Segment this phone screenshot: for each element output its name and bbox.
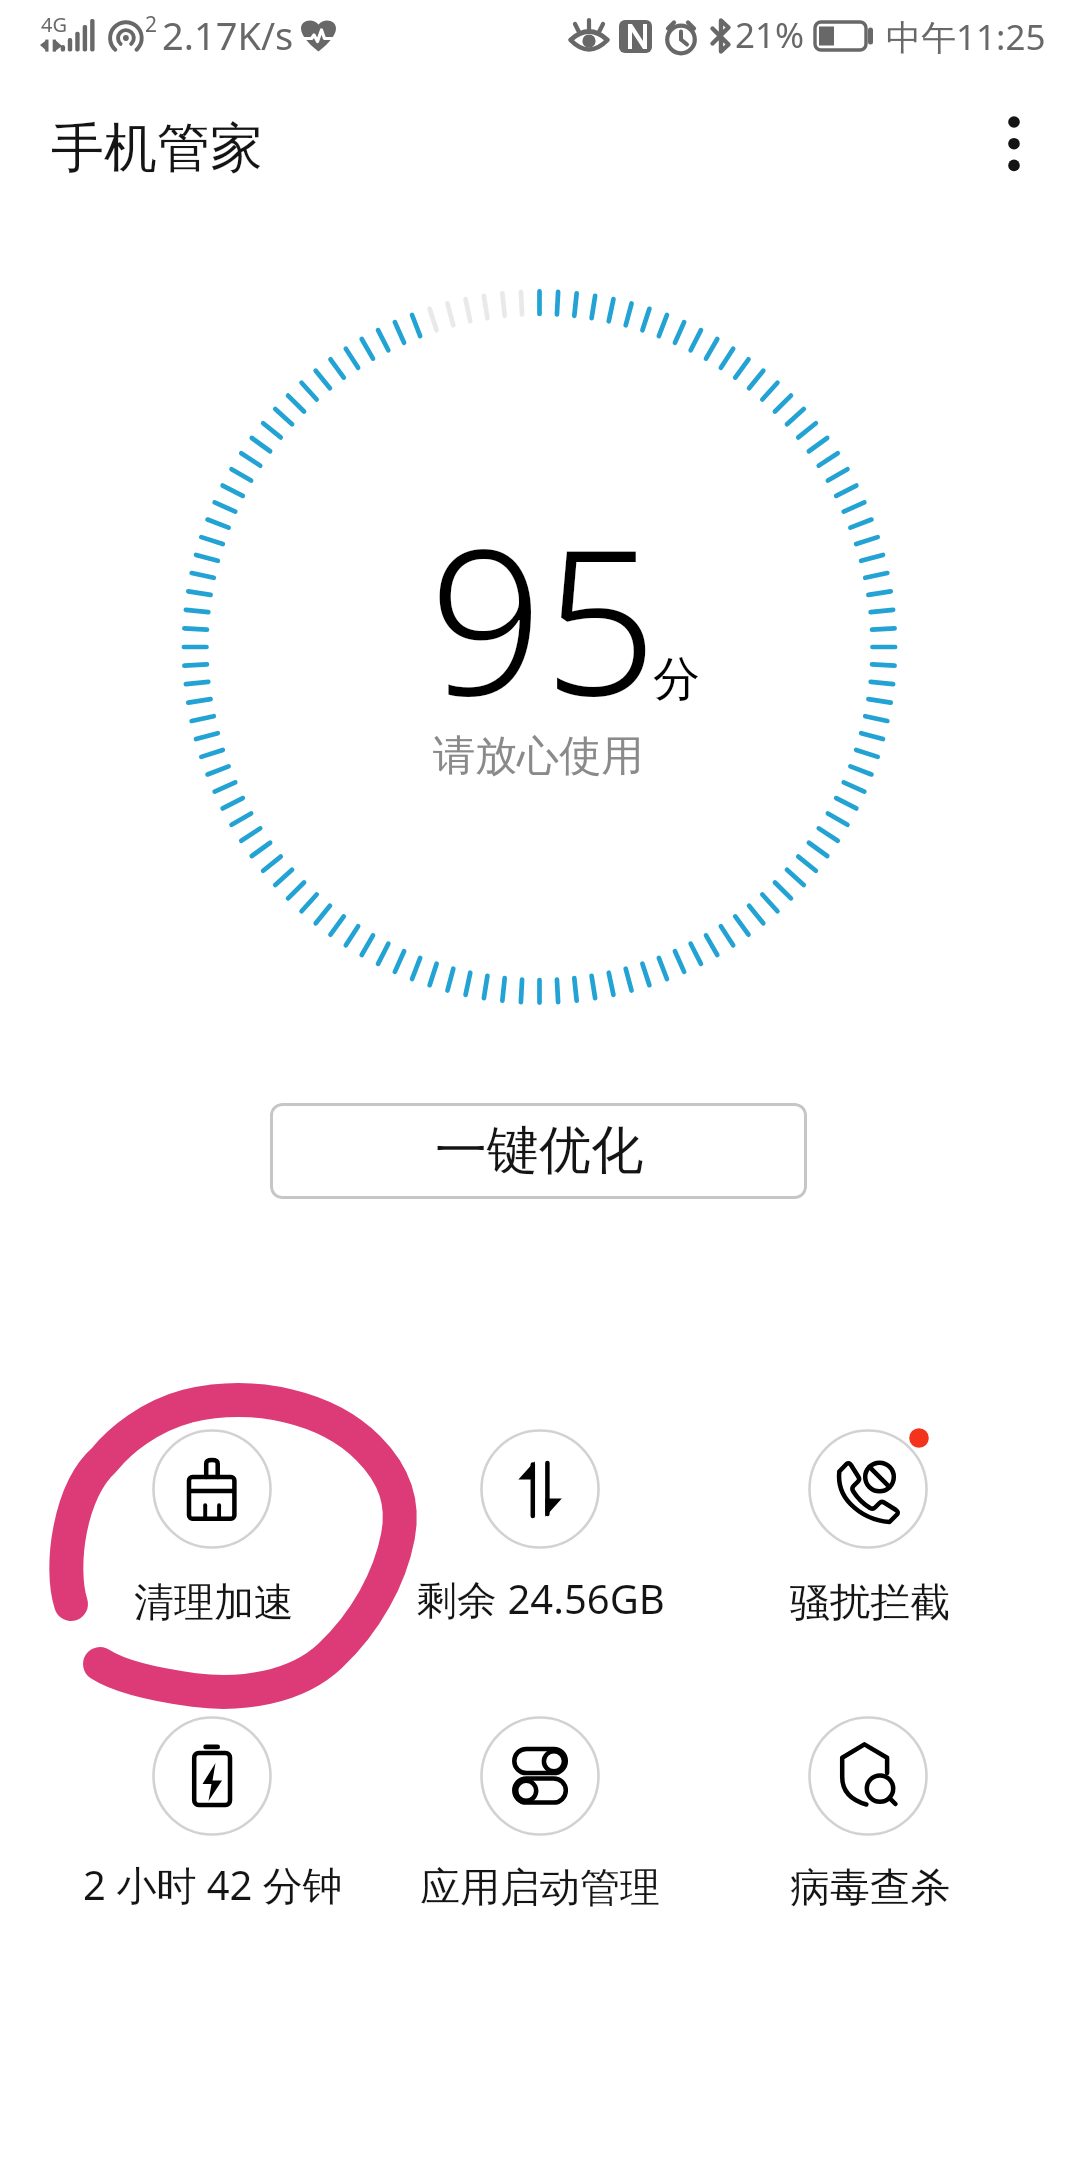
staticText: 一键优化: [435, 1118, 643, 1184]
staticText: 手机管家: [51, 115, 263, 182]
staticText: 应用启动管理: [420, 1862, 660, 1912]
button[interactable]: 病毒查杀: [708, 1706, 1028, 1921]
button[interactable]: 应用启动管理: [380, 1706, 700, 1921]
staticText: 2: [145, 10, 158, 39]
button[interactable]: 清理加速: [52, 1419, 372, 1634]
staticText: 清理加速: [134, 1577, 294, 1627]
staticText: 21%: [735, 11, 805, 59]
button[interactable]: 剩余 24.56GB: [380, 1419, 700, 1634]
button[interactable]: 一键优化: [270, 1103, 807, 1199]
staticText: 骚扰拦截: [790, 1577, 950, 1627]
button[interactable]: 2 小时 42 分钟: [52, 1706, 372, 1921]
staticText: 95: [429, 481, 658, 753]
staticText: 2.17K/s: [162, 9, 294, 61]
staticText: 分: [653, 650, 700, 709]
button[interactable]: More options: [966, 82, 1062, 178]
staticText: 中午11:25: [886, 13, 1046, 61]
staticText: 病毒查杀: [790, 1862, 950, 1912]
staticText: 4G: [41, 11, 67, 38]
staticText: 剩余 24.56GB: [417, 1571, 665, 1626]
staticText: 2 小时 42 分钟: [83, 1857, 343, 1912]
staticText: 请放心使用: [433, 730, 643, 783]
button[interactable]: 骚扰拦截: [708, 1419, 1028, 1634]
